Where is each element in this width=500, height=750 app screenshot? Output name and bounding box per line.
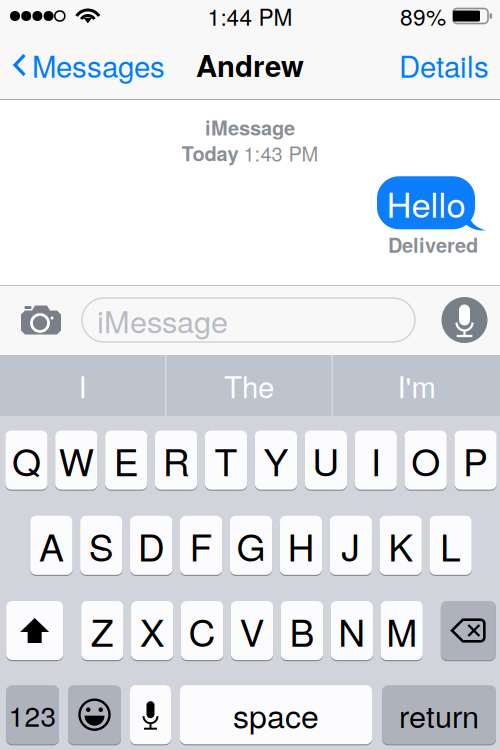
staticText: iMessage — [97, 298, 228, 342]
staticText: Messages — [32, 44, 165, 86]
staticText: Z — [91, 604, 114, 657]
staticText: G — [236, 519, 265, 572]
button[interactable]: X — [131, 600, 173, 661]
staticText: X — [140, 604, 165, 657]
button[interactable]: Emoji — [68, 685, 121, 745]
staticText: T — [214, 433, 237, 487]
button[interactable]: I — [0, 355, 165, 416]
button[interactable]: K — [379, 515, 422, 575]
staticText: B — [289, 604, 314, 657]
staticText: Today — [181, 139, 238, 167]
staticText: The — [224, 364, 274, 406]
button[interactable]: Messages — [0, 38, 173, 100]
button[interactable]: Details — [386, 38, 500, 100]
staticText: E — [114, 433, 139, 487]
button[interactable]: F — [180, 515, 222, 575]
button[interactable]: Camera — [0, 285, 82, 355]
staticText: W — [59, 433, 94, 487]
staticText: O — [411, 433, 440, 487]
staticText: C — [189, 604, 216, 657]
staticText: J — [341, 519, 360, 572]
button[interactable]: Z — [81, 600, 123, 661]
staticText: 1:43 PM — [243, 139, 318, 167]
staticText: 1:44 PM — [207, 0, 292, 32]
staticText: S — [89, 519, 114, 572]
button[interactable]: space — [180, 685, 372, 745]
button[interactable]: L — [429, 515, 472, 575]
button[interactable]: 123 — [6, 685, 59, 745]
staticText: Q — [12, 433, 41, 487]
button[interactable]: O — [404, 430, 447, 490]
staticText: space — [233, 692, 319, 738]
staticText: 123 — [8, 695, 56, 735]
button[interactable]: A — [30, 515, 72, 575]
button[interactable]: D — [130, 515, 172, 575]
button[interactable]: Dictation — [130, 685, 171, 745]
staticText: I — [78, 364, 86, 406]
staticText: A — [39, 519, 64, 572]
staticText: I'm — [397, 364, 435, 406]
staticText: Delivered — [388, 230, 478, 259]
staticText: return — [399, 693, 479, 737]
button[interactable]: R — [155, 430, 197, 490]
staticText: R — [163, 433, 190, 487]
staticText: Andrew — [196, 44, 304, 86]
button[interactable]: S — [80, 515, 122, 575]
staticText: P — [463, 433, 488, 487]
staticText: D — [138, 519, 165, 572]
button[interactable]: U — [305, 430, 347, 490]
staticText: Y — [263, 433, 288, 487]
button[interactable]: H — [280, 515, 322, 575]
button[interactable]: Dictate — [429, 285, 500, 355]
staticText: V — [239, 604, 264, 657]
staticText: U — [312, 433, 339, 487]
button[interactable]: Y — [255, 430, 297, 490]
button[interactable]: T — [205, 430, 247, 490]
staticText: F — [190, 519, 213, 572]
button[interactable]: J — [330, 515, 372, 575]
button[interactable]: W — [55, 430, 97, 490]
button[interactable]: Q — [5, 430, 48, 490]
staticText: 89% — [400, 0, 446, 32]
button[interactable]: V — [231, 600, 273, 661]
staticText: H — [287, 519, 314, 572]
button[interactable]: G — [230, 515, 272, 575]
button[interactable]: Delete — [441, 600, 496, 661]
staticText: Hello — [386, 178, 465, 228]
button[interactable]: C — [181, 600, 223, 661]
button[interactable]: I'm — [333, 355, 500, 416]
staticText: M — [386, 604, 417, 657]
staticText: L — [440, 519, 461, 572]
button[interactable]: return — [382, 685, 496, 745]
button[interactable]: E — [105, 430, 147, 490]
button[interactable]: N — [331, 600, 373, 661]
button[interactable]: B — [281, 600, 323, 661]
staticText: K — [388, 519, 413, 572]
button[interactable]: Shift — [6, 600, 63, 661]
staticText: Details — [399, 44, 489, 86]
button[interactable]: iMessage — [82, 298, 415, 342]
button[interactable]: The — [166, 355, 331, 416]
button[interactable]: P — [454, 430, 497, 490]
staticText: N — [338, 604, 365, 657]
button[interactable]: M — [380, 600, 423, 661]
staticText: iMessage — [205, 113, 295, 142]
button[interactable]: I — [355, 430, 397, 490]
staticText: I — [371, 433, 381, 487]
